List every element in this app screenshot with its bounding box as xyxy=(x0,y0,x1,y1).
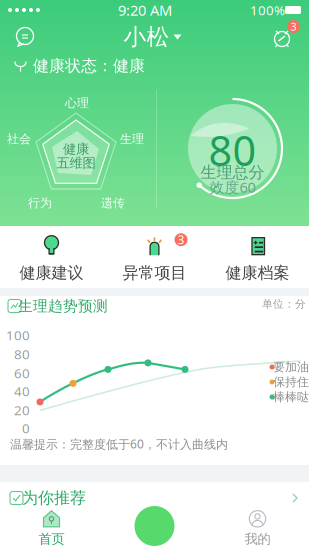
staticText: 为你推荐 xyxy=(22,488,86,508)
staticText: 我的 xyxy=(244,531,270,547)
staticText: 40 xyxy=(14,382,30,400)
staticText: 0 xyxy=(22,419,30,437)
staticText: 健康状态：健康 xyxy=(33,56,145,76)
button[interactable]: 健康建议 xyxy=(0,226,103,288)
staticText: 生理 xyxy=(120,132,144,146)
staticText: 3 xyxy=(290,19,296,34)
staticText: 生理总分 xyxy=(200,163,264,182)
button[interactable]: 我的 xyxy=(206,506,309,550)
staticText: 健康 xyxy=(63,141,89,157)
staticText: 9:20 AM xyxy=(118,0,172,20)
staticText: 健康档案 xyxy=(225,263,289,283)
staticText: 异常项目 xyxy=(122,263,186,283)
staticText: 温馨提示：完整度低于60，不计入曲线内 xyxy=(10,436,228,452)
staticText: 20 xyxy=(14,401,30,419)
staticText: 要加油 xyxy=(273,360,309,374)
staticText: 遗传 xyxy=(101,196,125,210)
button[interactable]: Messages xyxy=(12,24,38,50)
staticText: 心理 xyxy=(65,96,89,110)
button[interactable]: 为你推荐 xyxy=(0,482,309,515)
staticText: 首页 xyxy=(38,531,64,547)
staticText: 健康建议 xyxy=(19,263,83,283)
staticText: 80 xyxy=(208,123,256,177)
staticText: 保持住 xyxy=(273,375,309,389)
button[interactable]: Add xyxy=(134,506,174,546)
button[interactable]: 小松 xyxy=(123,23,181,51)
button[interactable]: 健康档案 xyxy=(206,226,309,288)
staticText: 80 xyxy=(14,345,30,363)
staticText: 五维图 xyxy=(56,155,95,171)
staticText: 单位：分 xyxy=(262,297,306,310)
staticText: 60 xyxy=(14,364,30,382)
staticText: 效度60 xyxy=(209,177,255,197)
staticText: 社会 xyxy=(7,132,31,146)
staticText: 3 xyxy=(177,232,184,248)
button[interactable]: 首页 xyxy=(0,506,103,550)
staticText: 小松 xyxy=(123,23,169,51)
button[interactable]: Reminders xyxy=(267,24,297,50)
staticText: 100 xyxy=(6,326,30,344)
staticText: 100% xyxy=(250,1,285,19)
button[interactable]: 3 xyxy=(103,226,206,288)
staticText: 行为 xyxy=(28,196,52,210)
staticText: 生理趋势预测 xyxy=(18,297,108,315)
staticText: 棒棒哒 xyxy=(273,390,309,404)
